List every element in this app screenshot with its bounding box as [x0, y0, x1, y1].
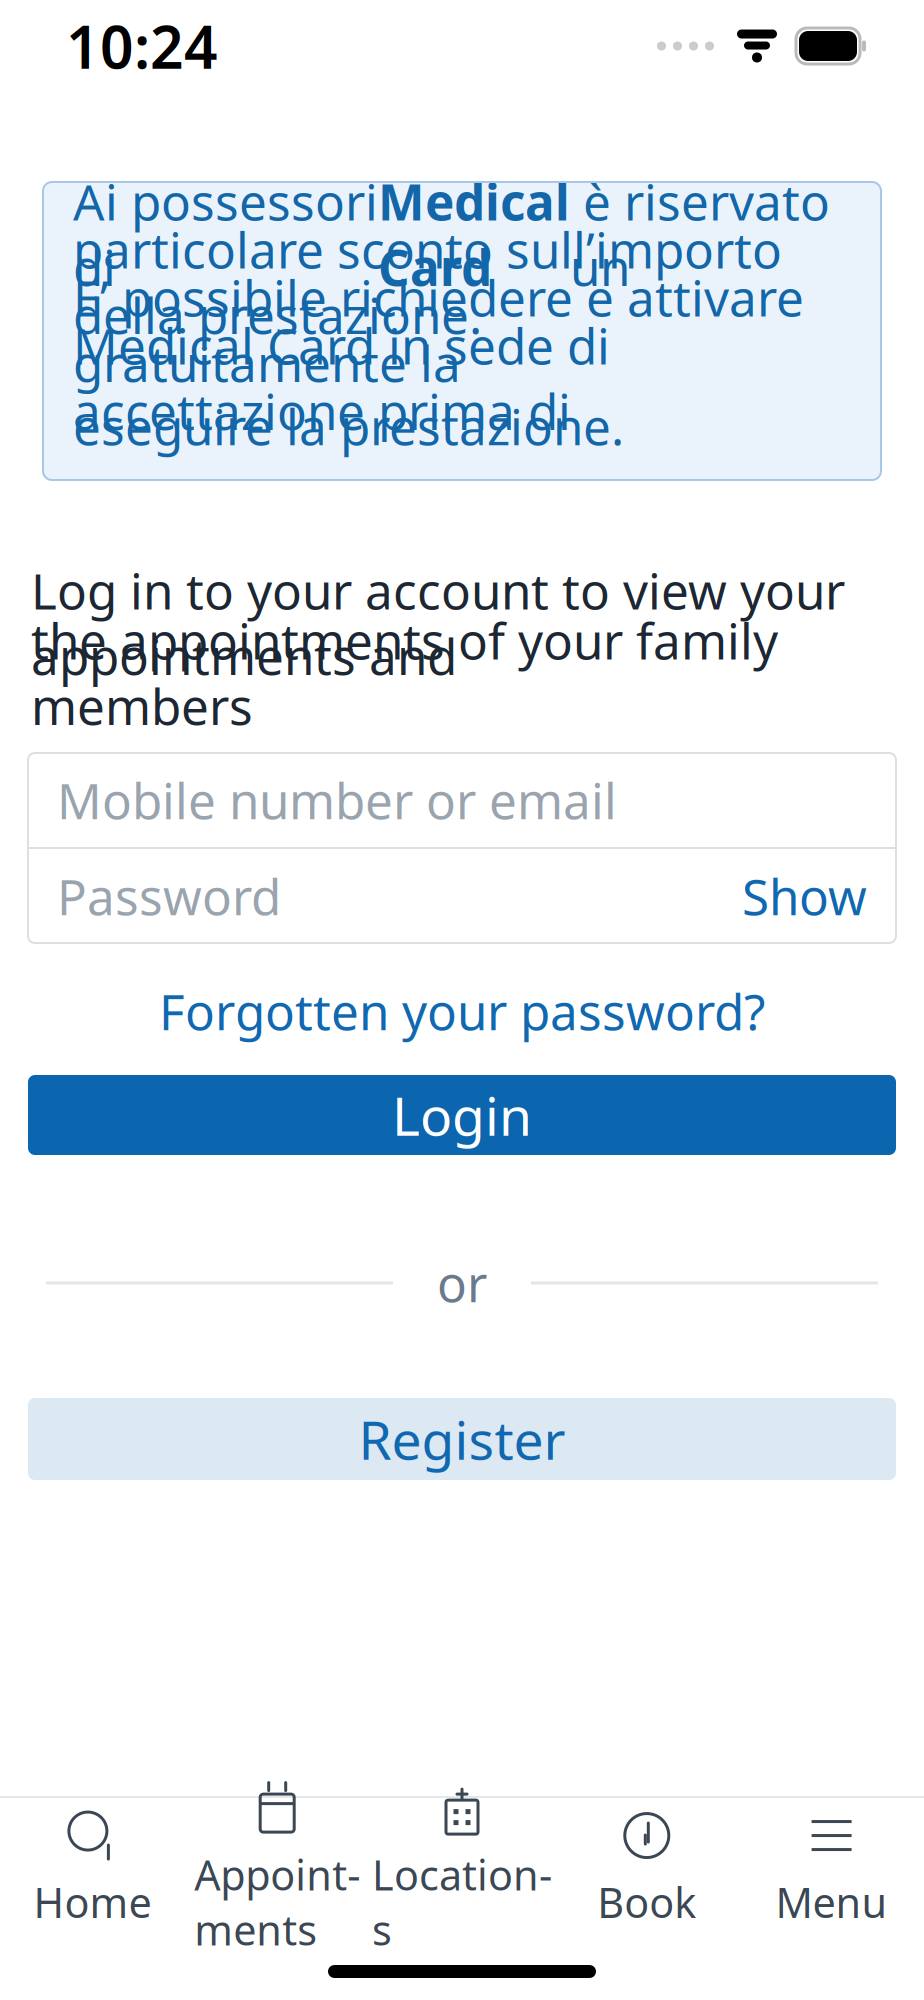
staticText: Register — [358, 1404, 565, 1474]
button[interactable]: Password — [28, 849, 896, 943]
button[interactable]: Forgotten your password? — [28, 983, 896, 1039]
staticText: eseguire la prestazione. — [73, 393, 624, 459]
staticText: Medical Card in sede di accettazione pri… — [73, 312, 610, 443]
staticText: E’ possibile richiedere e attivare gratu… — [73, 264, 804, 395]
button[interactable]: Home — [0, 1810, 185, 1928]
staticText: 10:24 — [66, 7, 218, 85]
button[interactable]: Book — [554, 1810, 739, 1928]
staticText: Show — [742, 863, 867, 929]
button[interactable]: Menu — [739, 1810, 924, 1928]
button[interactable]: Register — [28, 1398, 896, 1480]
staticText: particolare sconto sull’importo della pr… — [73, 216, 782, 347]
staticText: Forgotten your password? — [159, 978, 765, 1044]
button[interactable]: Appointments — [185, 1810, 370, 1928]
staticText: Menu — [776, 1875, 888, 1929]
button[interactable]: Locations — [370, 1810, 554, 1928]
staticText: Log in to your account to view your appo… — [31, 557, 845, 688]
staticText: or — [437, 1250, 487, 1316]
staticText: the appointments of your family members — [31, 607, 778, 738]
staticText: Appointments — [194, 1847, 360, 1957]
staticText: Mobile number or email — [57, 767, 617, 833]
staticText: è riservato un — [570, 168, 830, 299]
staticText: Ai possessori di — [73, 168, 378, 299]
staticText: Medical Card — [378, 168, 570, 299]
staticText: Login — [392, 1080, 532, 1150]
staticText: Home — [33, 1875, 151, 1929]
staticText: Locations — [372, 1847, 552, 1957]
button[interactable]: Mobile number or email — [28, 753, 896, 847]
staticText: Password — [57, 863, 281, 929]
button[interactable]: Login — [28, 1075, 896, 1155]
staticText: Book — [597, 1875, 696, 1929]
